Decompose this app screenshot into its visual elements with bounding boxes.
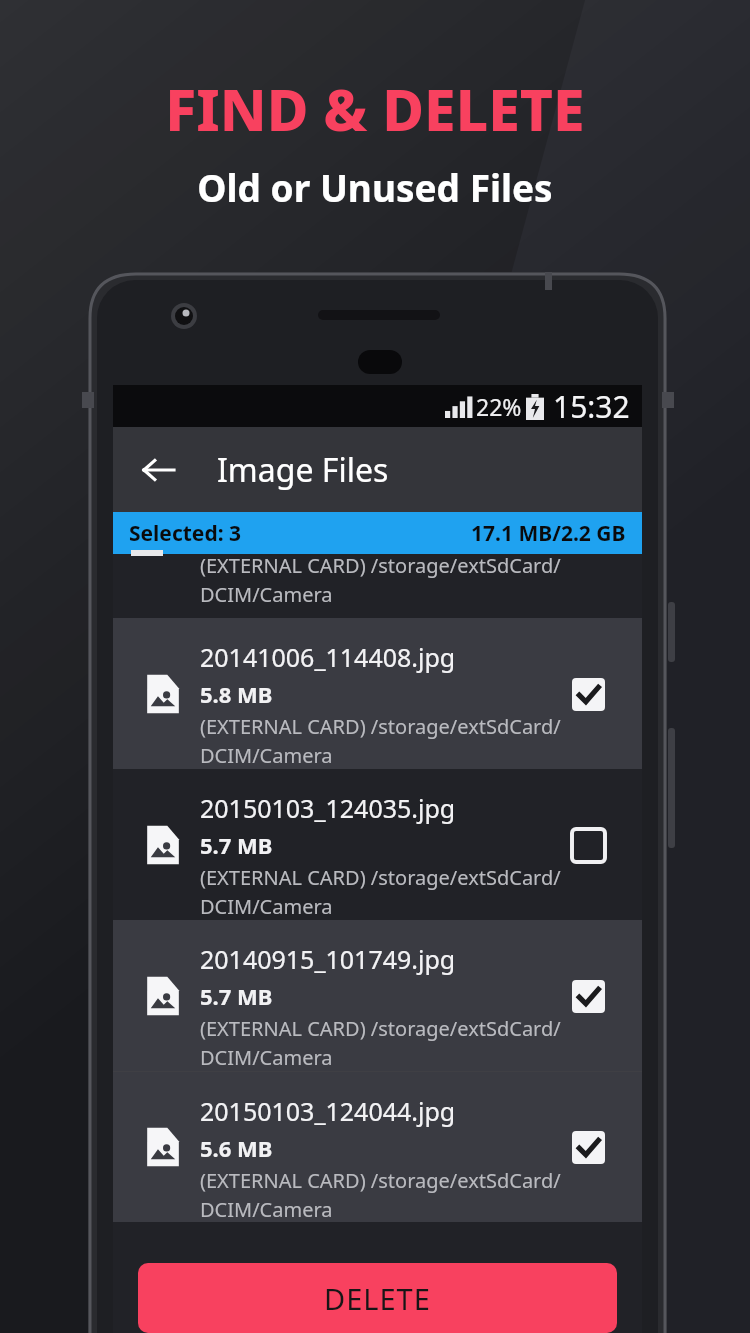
staticText: 20141006_114408.jpg <box>200 640 456 674</box>
staticText: 5.6 MB <box>200 1133 273 1163</box>
staticText: DCIM/Camera <box>200 742 333 769</box>
button[interactable]: 20150103_124035.jpg <box>113 769 642 920</box>
button[interactable]: DELETE <box>138 1263 617 1333</box>
button[interactable]: Not selected <box>566 823 610 867</box>
staticText: Old or Unused Files <box>197 162 553 212</box>
staticText: 5.8 MB <box>200 679 273 709</box>
staticText: DCIM/Camera <box>200 1044 333 1071</box>
staticText: 5.7 MB <box>200 981 273 1011</box>
button[interactable]: Back <box>131 443 185 497</box>
staticText: (EXTERNAL CARD) /storage/extSdCard/ <box>200 1167 561 1194</box>
staticText: 15:32 <box>553 386 630 427</box>
staticText: 5.7 MB <box>200 830 273 860</box>
staticText: 20150103_124044.jpg <box>200 1094 456 1128</box>
staticText: (EXTERNAL CARD) /storage/extSdCard/ <box>200 864 561 891</box>
staticText: Selected: 3 <box>129 519 242 548</box>
staticText: DCIM/Camera <box>200 893 333 920</box>
staticText: Image Files <box>217 448 389 492</box>
staticText: (EXTERNAL CARD) /storage/extSdCard/ <box>200 1015 561 1042</box>
staticText: 22% <box>476 391 522 422</box>
staticText: 20141109_150752.jpg <box>200 1257 456 1291</box>
staticText: (EXTERNAL CARD) /storage/extSdCard/ <box>200 713 561 740</box>
button[interactable]: 20141006_114408.jpg <box>113 618 642 769</box>
staticText: DCIM/Camera <box>200 1196 333 1223</box>
staticText: 20150103_124035.jpg <box>200 791 456 825</box>
staticText: DELETE <box>324 1279 431 1318</box>
staticText: DCIM/Camera <box>200 581 333 608</box>
button[interactable]: 20150103_124044.jpg <box>113 1072 642 1222</box>
button[interactable]: Selected <box>566 974 610 1018</box>
staticText: 17.1 MB/2.2 GB <box>471 519 626 548</box>
staticText: (EXTERNAL CARD) /storage/extSdCard/ <box>200 552 561 579</box>
staticText: 20140915_101749.jpg <box>200 942 456 976</box>
staticText: FIND & DELETE <box>165 70 585 148</box>
button[interactable]: 20140915_101749.jpg <box>113 920 642 1071</box>
button[interactable]: Selected <box>566 1125 610 1169</box>
button[interactable]: Selected <box>566 672 610 716</box>
